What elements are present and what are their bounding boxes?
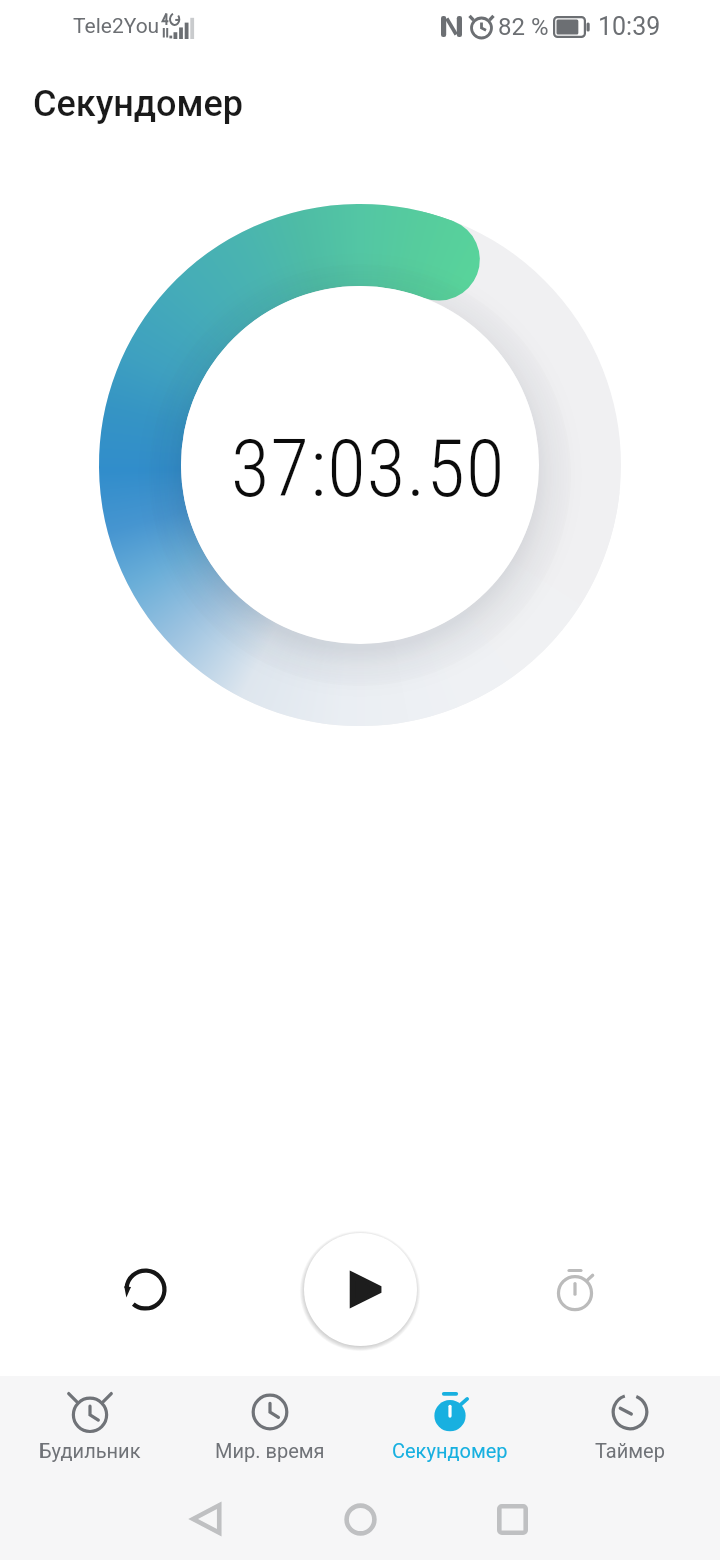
staticText: Таймер bbox=[595, 1439, 665, 1462]
button[interactable]: Будильник bbox=[0, 1376, 180, 1478]
button[interactable]: Мир. время bbox=[180, 1376, 360, 1478]
staticText: Будильник bbox=[39, 1439, 141, 1462]
staticText: 10:39 bbox=[598, 12, 661, 41]
button[interactable]: Recents bbox=[476, 1483, 548, 1555]
staticText: Секундомер bbox=[392, 1439, 508, 1462]
staticText: Tele2You bbox=[73, 14, 160, 39]
staticText: 37:03.50 bbox=[231, 423, 506, 516]
button[interactable]: Start bbox=[304, 1233, 417, 1346]
staticText: Секундомер bbox=[33, 83, 244, 125]
button[interactable]: Reset bbox=[105, 1249, 185, 1329]
button[interactable]: Lap bbox=[535, 1249, 615, 1329]
button[interactable]: Home bbox=[324, 1483, 396, 1555]
button[interactable]: Back bbox=[169, 1483, 241, 1555]
button[interactable]: Секундомер bbox=[360, 1376, 540, 1478]
staticText: 82 % bbox=[498, 13, 549, 41]
staticText: Мир. время bbox=[215, 1439, 325, 1462]
button[interactable]: Таймер bbox=[540, 1376, 720, 1478]
